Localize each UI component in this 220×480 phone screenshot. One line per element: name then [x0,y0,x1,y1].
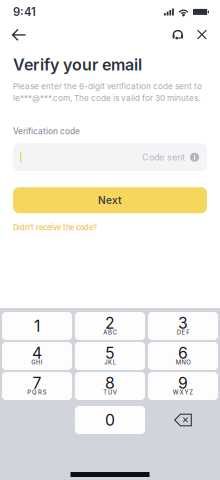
button[interactable]: 9 [148,372,218,400]
staticText: 2 [105,313,115,332]
staticText: Verification code [13,126,80,136]
button[interactable]: 8 [75,372,145,400]
staticText: 5 [105,343,115,362]
button[interactable]: 5 [75,342,145,370]
staticText: 8 [105,373,115,392]
button[interactable]: 0 [75,406,145,434]
button[interactable]: 7 [2,372,72,400]
staticText: 0 [105,410,115,429]
staticText: PQRS [27,389,47,396]
button[interactable]: 6 [148,342,218,370]
button[interactable]: Customer support [166,24,190,46]
staticText: le***@***.com, The code is valid for 30 … [13,93,200,103]
staticText: MNO [176,359,190,366]
staticText: Verify your email [13,55,142,74]
staticText: ABC [103,329,117,336]
staticText: GHI [31,359,43,366]
staticText: TUV [103,389,117,396]
staticText: Please enter the 6-digit verification co… [13,81,202,91]
button[interactable]: 1 [2,312,72,340]
button[interactable]: Next [13,187,207,213]
staticText: 6 [178,343,188,362]
button[interactable]: Delete [148,406,218,434]
button[interactable]: Close [190,24,214,46]
staticText: 3 [178,313,188,332]
button[interactable]: 3 [148,312,218,340]
staticText: Code sent [142,152,185,163]
button[interactable]: Didn't receive the code? [13,223,97,232]
button[interactable]: Back [5,24,33,46]
staticText: Didn't receive the code? [13,223,97,232]
staticText: WXYZ [173,389,193,396]
staticText: JKL [104,359,116,366]
staticText: 1 [34,316,40,335]
staticText: DEF [177,329,189,336]
staticText: 7 [32,373,41,392]
staticText: 9 [178,373,188,392]
button[interactable]: 2 [75,312,145,340]
staticText: 4 [32,343,42,362]
button[interactable]: 4 [2,342,72,370]
staticText: 9:41 [13,5,36,19]
staticText: Next [98,194,122,206]
